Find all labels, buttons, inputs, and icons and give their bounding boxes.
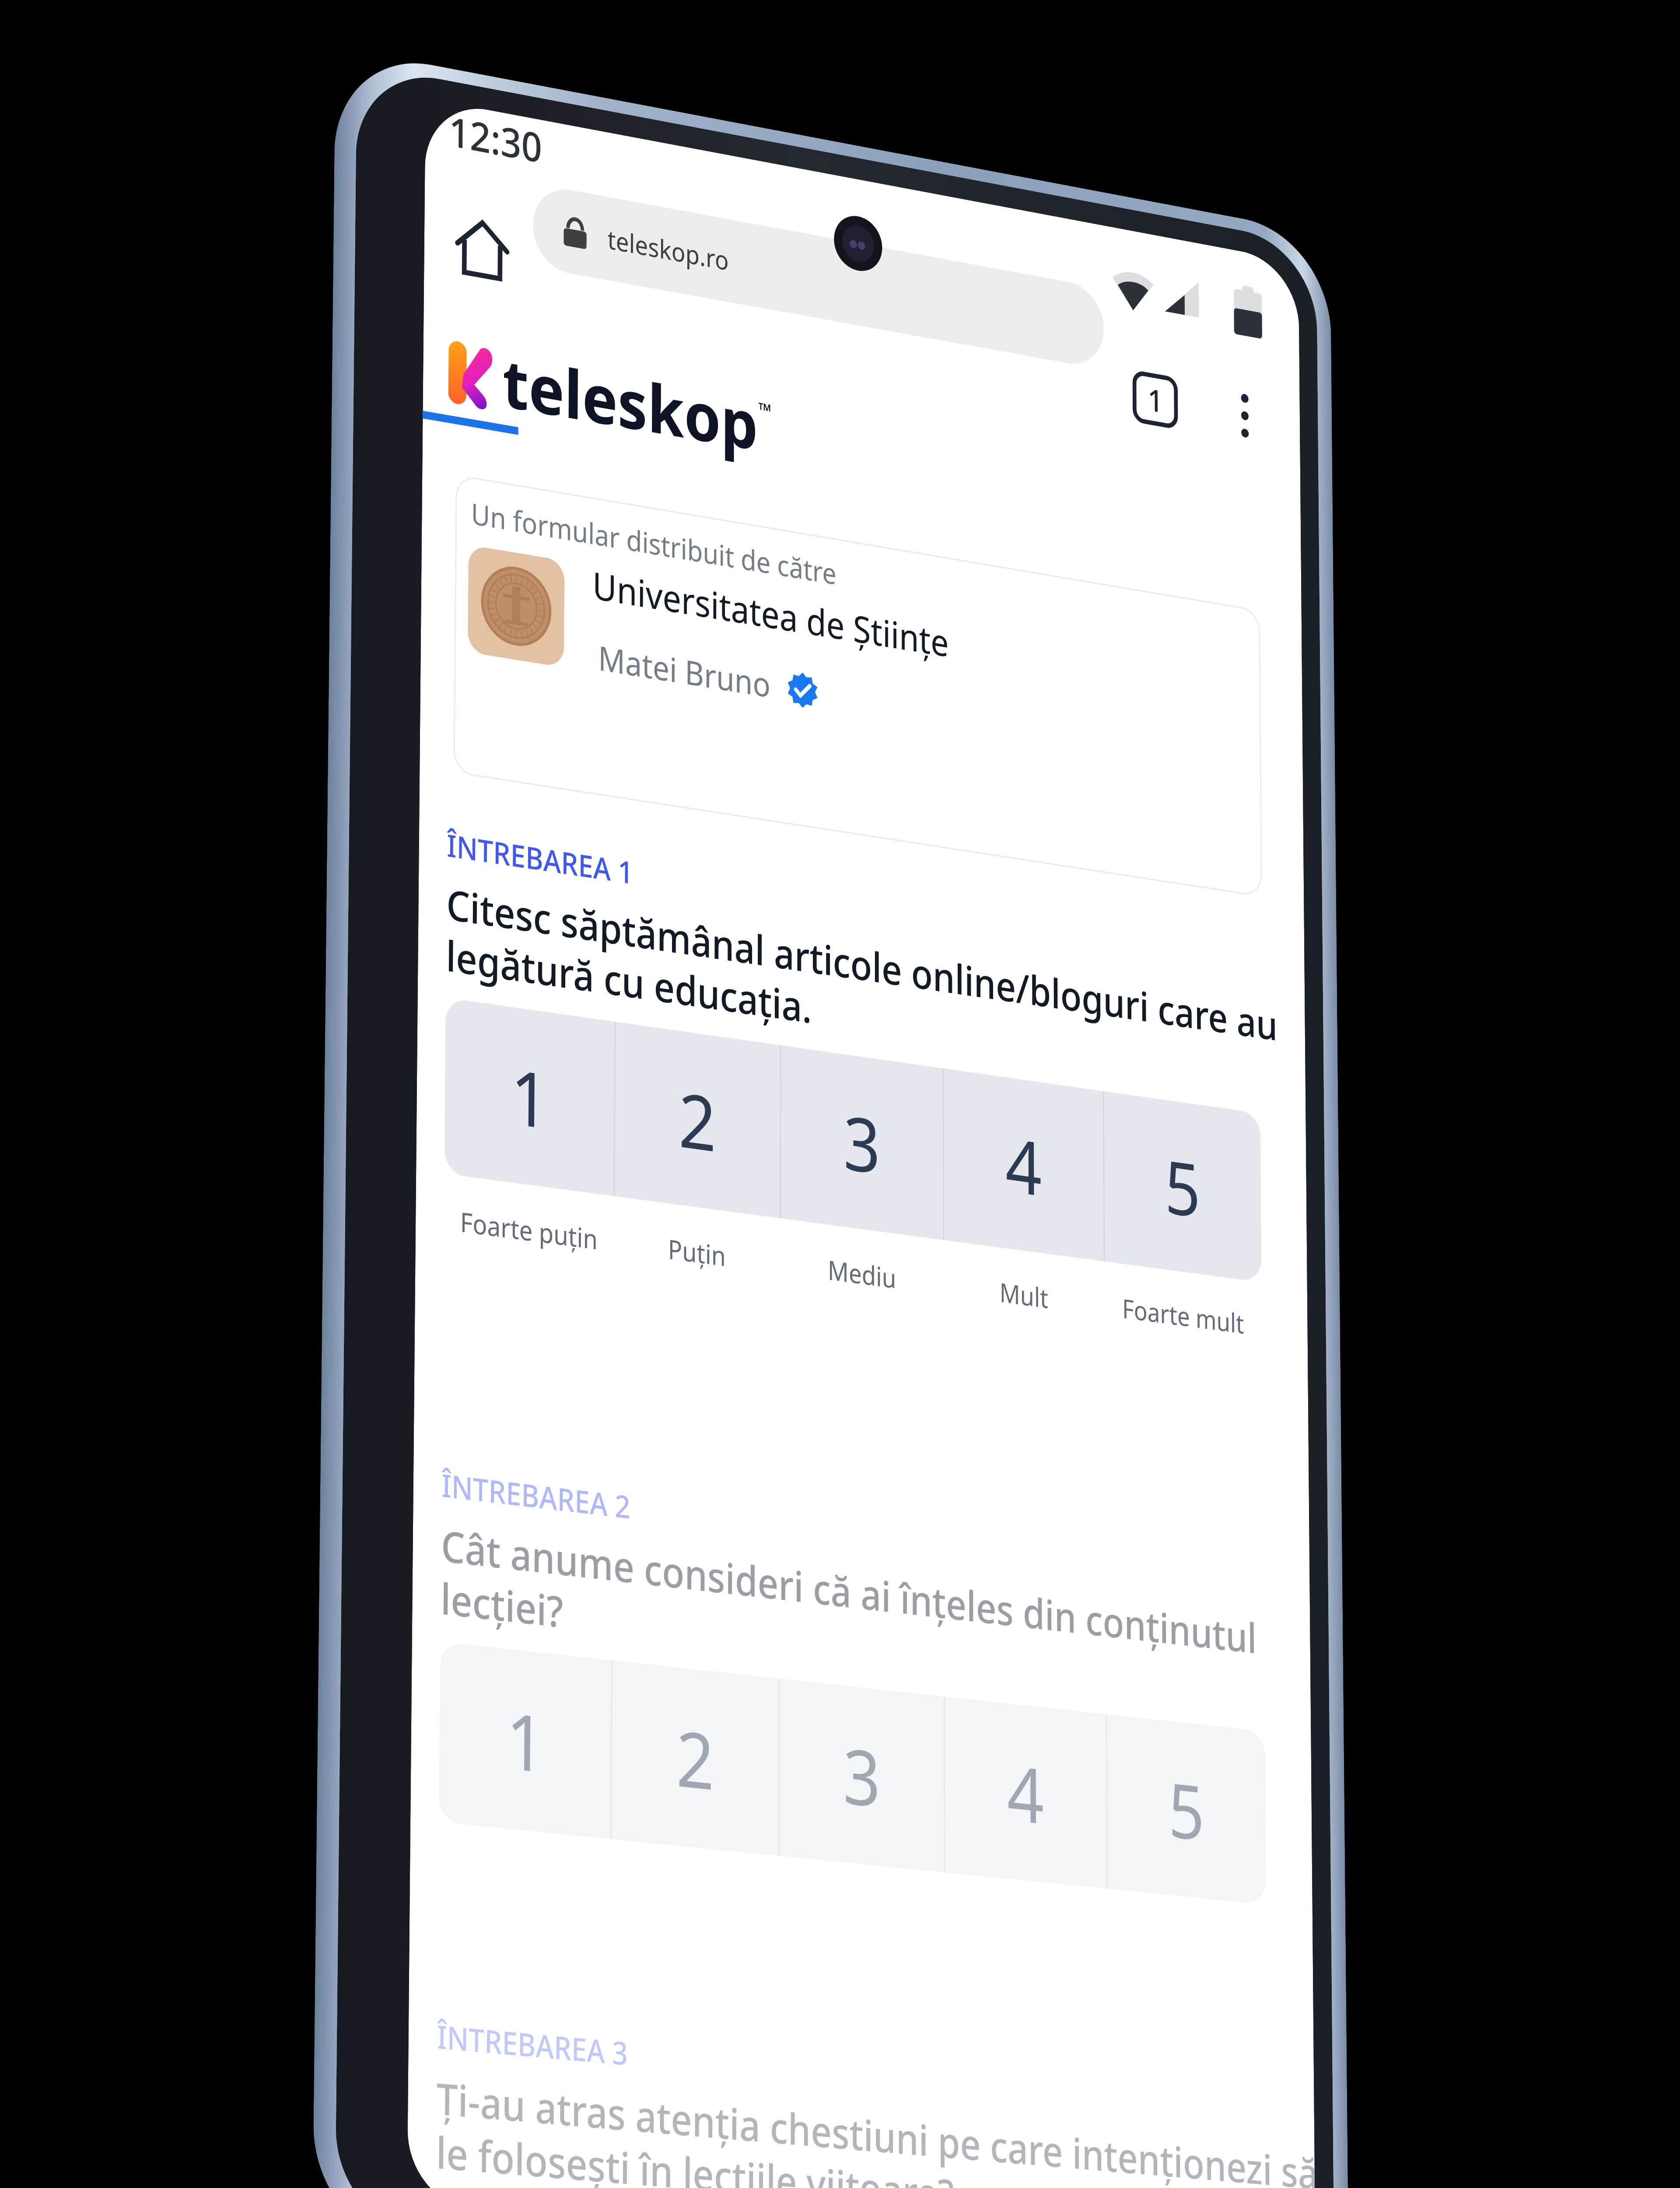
button[interactable]: 4 (943, 1068, 1104, 1261)
staticText: 2 (676, 1704, 715, 1812)
staticText: 1 (510, 1043, 549, 1151)
staticText: 12:30 (449, 103, 542, 175)
button[interactable]: Address bar teleskop.ro (533, 183, 1104, 370)
staticText: 4 (1005, 1113, 1042, 1218)
staticText: Puțin (668, 1230, 726, 1274)
staticText: Ți-au atras atenția chestiuni pe care in… (436, 2068, 1315, 2188)
staticText: Mediu (828, 1251, 896, 1296)
staticText: Mult (999, 1274, 1048, 1316)
staticText: Matei Bruno (598, 634, 771, 708)
staticText: Citesc săptămânal articole online/blogur… (446, 875, 1278, 1102)
button[interactable]: 5 (1106, 1714, 1266, 1905)
staticText: 1 (506, 1686, 545, 1795)
button[interactable]: 1 (444, 998, 614, 1196)
staticText: Universitatea de Științe (592, 559, 949, 668)
button[interactable]: 3 (779, 1678, 944, 1872)
staticText: Foarte mult (1122, 1290, 1244, 1341)
staticText: ™ (758, 396, 772, 424)
button[interactable]: 3 (780, 1045, 943, 1240)
staticText: ÎNTREBAREA 1 (447, 824, 633, 893)
staticText: Un formular distribuit de către (471, 493, 837, 593)
staticText: ÎNTREBAREA 2 (441, 1463, 631, 1528)
staticText: 3 (843, 1090, 881, 1196)
staticText: Foarte puțin (460, 1203, 598, 1257)
staticText: ÎNTREBAREA 3 (437, 2014, 628, 2075)
staticText: 5 (1168, 1757, 1205, 1862)
staticText: 5 (1164, 1135, 1201, 1239)
staticText: 4 (1007, 1740, 1044, 1846)
button[interactable]: 1 (439, 1642, 611, 1839)
button[interactable]: 4 (944, 1696, 1107, 1889)
staticText: 1 (1148, 378, 1163, 422)
staticText: teleskop (502, 335, 758, 470)
staticText: 2 (678, 1067, 717, 1174)
button[interactable]: Home (448, 206, 517, 294)
staticText: Cât anume consideri că ai înțeles din co… (440, 1516, 1257, 1716)
button[interactable]: Tabs (1128, 363, 1183, 436)
button[interactable]: More options (1218, 380, 1272, 452)
button[interactable]: 2 (614, 1022, 780, 1218)
staticText: teleskop.ro (607, 221, 729, 278)
button[interactable]: Un formular distribuit de către (453, 474, 1262, 897)
button[interactable]: 5 (1103, 1091, 1262, 1282)
button[interactable]: 2 (610, 1660, 779, 1856)
staticText: 3 (843, 1722, 881, 1829)
